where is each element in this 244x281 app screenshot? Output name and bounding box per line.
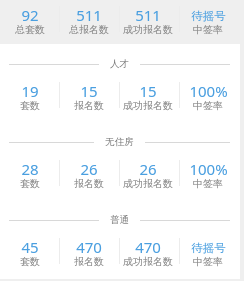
staticText: 中签率 (193, 255, 223, 268)
staticText: 总套数 (15, 23, 45, 36)
staticText: 待摇号 (191, 241, 226, 255)
button[interactable]: 511 (118, 9, 178, 35)
button[interactable]: 470 (59, 241, 118, 267)
staticText: 普通 (110, 214, 129, 226)
staticText: 100% (189, 159, 228, 179)
staticText: 45 (21, 237, 39, 257)
staticText: 报名数 (74, 99, 104, 112)
staticText: 511 (135, 5, 161, 25)
staticText: 总报名数 (69, 23, 109, 36)
button[interactable]: 45 (0, 241, 59, 267)
staticText: 套数 (20, 177, 40, 190)
staticText: 中签率 (193, 177, 223, 190)
button[interactable]: 28 (0, 163, 59, 189)
staticText: 470 (76, 237, 102, 257)
staticText: 人才 (110, 58, 129, 70)
button[interactable]: 15 (118, 85, 178, 111)
staticText: 511 (76, 5, 102, 25)
staticText: 报名数 (74, 255, 104, 268)
staticText: 92 (21, 5, 39, 25)
staticText: 套数 (20, 255, 40, 268)
staticText: 成功报名数 (123, 99, 173, 112)
staticText: 15 (80, 81, 98, 101)
staticText: 报名数 (74, 177, 104, 190)
staticText: 26 (139, 159, 157, 179)
button[interactable]: 92 (0, 9, 59, 35)
staticText: 28 (21, 159, 39, 179)
button[interactable]: 511 (59, 9, 118, 35)
staticText: 470 (135, 237, 161, 257)
staticText: 成功报名数 (123, 23, 173, 36)
staticText: 19 (21, 81, 39, 101)
staticText: 无住房 (105, 136, 134, 148)
button[interactable]: 26 (118, 163, 178, 189)
button[interactable]: 15 (59, 85, 118, 111)
staticText: 待摇号 (191, 9, 226, 23)
button[interactable]: 100% (178, 163, 238, 189)
staticText: 套数 (20, 99, 40, 112)
staticText: 26 (80, 159, 98, 179)
staticText: 成功报名数 (123, 177, 173, 190)
staticText: 100% (189, 81, 228, 101)
button[interactable]: 100% (178, 85, 238, 111)
button[interactable]: 26 (59, 163, 118, 189)
button[interactable]: 待摇号 (178, 9, 238, 35)
staticText: 中签率 (193, 99, 223, 112)
staticText: 中签率 (193, 23, 223, 36)
button[interactable]: 470 (118, 241, 178, 267)
staticText: 成功报名数 (123, 255, 173, 268)
button[interactable]: 19 (0, 85, 59, 111)
staticText: 15 (139, 81, 157, 101)
button[interactable]: 待摇号 (178, 241, 238, 267)
